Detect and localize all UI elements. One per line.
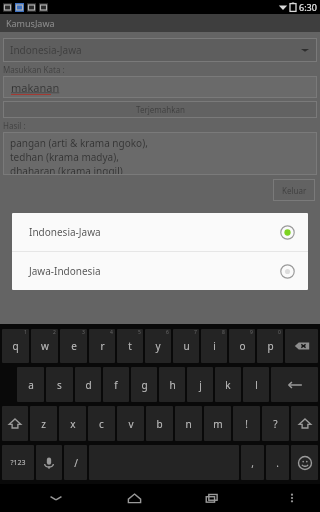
- staticText: .: [276, 456, 279, 470]
- button[interactable]: Indonesia-Jawa: [12, 213, 308, 251]
- button[interactable]: /: [64, 445, 87, 480]
- button[interactable]: Enter: [271, 367, 318, 402]
- staticText: 5: [138, 329, 141, 336]
- staticText: 6: [166, 329, 169, 336]
- staticText: ?: [273, 417, 278, 431]
- button[interactable]: Keluar: [273, 179, 315, 201]
- button[interactable]: j: [187, 367, 213, 402]
- staticText: Keluar: [282, 185, 307, 196]
- staticText: x: [70, 417, 76, 431]
- button[interactable]: z: [30, 406, 57, 441]
- staticText: ?123: [10, 458, 26, 468]
- button[interactable]: a: [17, 367, 44, 402]
- button[interactable]: q: [2, 329, 29, 363]
- button[interactable]: y: [145, 329, 171, 363]
- button[interactable]: e: [60, 329, 87, 363]
- button[interactable]: Backspace: [285, 329, 318, 363]
- staticText: Indonesia-Jawa: [10, 43, 82, 57]
- staticText: k: [225, 378, 231, 392]
- button[interactable]: k: [215, 367, 241, 402]
- button[interactable]: m: [204, 406, 231, 441]
- staticText: 6:30: [299, 1, 317, 13]
- button[interactable]: f: [103, 367, 129, 402]
- staticText: tedhan (krama madya),: [10, 150, 119, 164]
- button[interactable]: ,: [241, 445, 264, 480]
- staticText: t: [128, 339, 132, 353]
- button[interactable]: More options: [278, 484, 306, 512]
- button[interactable]: r: [89, 329, 115, 363]
- staticText: s: [57, 378, 62, 392]
- staticText: n: [185, 417, 192, 431]
- staticText: 8: [222, 329, 225, 336]
- button[interactable]: o: [229, 329, 255, 363]
- button[interactable]: s: [46, 367, 73, 402]
- staticText: /: [74, 456, 78, 470]
- staticText: i: [213, 339, 216, 353]
- staticText: dhaharan (krama inggil): [10, 164, 123, 175]
- button[interactable]: l: [243, 367, 269, 402]
- staticText: 1: [24, 329, 27, 336]
- button[interactable]: b: [146, 406, 173, 441]
- button[interactable]: p: [257, 329, 283, 363]
- button[interactable]: t: [117, 329, 143, 363]
- staticText: q: [12, 339, 19, 353]
- staticText: 2: [53, 329, 56, 336]
- staticText: Indonesia-Jawa: [29, 225, 101, 239]
- button[interactable]: h: [159, 367, 185, 402]
- staticText: ,: [251, 456, 254, 470]
- button[interactable]: Home: [117, 484, 151, 512]
- button[interactable]: ?123: [2, 445, 34, 480]
- button[interactable]: x: [59, 406, 86, 441]
- button[interactable]: Hide keyboard: [39, 484, 73, 512]
- button[interactable]: g: [131, 367, 157, 402]
- button[interactable]: Terjemahkan: [3, 101, 317, 118]
- staticText: o: [239, 339, 246, 353]
- staticText: z: [41, 417, 46, 431]
- staticText: !: [245, 417, 248, 431]
- button[interactable]: Shift: [2, 406, 28, 441]
- staticText: f: [114, 378, 118, 392]
- button[interactable]: i: [201, 329, 227, 363]
- button[interactable]: Indonesia-Jawa: [3, 38, 317, 62]
- button[interactable]: ?: [262, 406, 289, 441]
- staticText: d: [85, 378, 92, 392]
- button[interactable]: d: [75, 367, 101, 402]
- staticText: m: [213, 417, 223, 431]
- button[interactable]: c: [88, 406, 115, 441]
- button[interactable]: Emoji: [291, 445, 318, 480]
- staticText: Masukkan Kata :: [3, 64, 65, 75]
- staticText: 7: [194, 329, 197, 336]
- staticText: v: [128, 417, 134, 431]
- staticText: pangan (arti & krama ngoko),: [10, 136, 148, 150]
- staticText: u: [183, 339, 190, 353]
- staticText: 3: [82, 329, 85, 336]
- staticText: Jawa-Indonesia: [29, 264, 101, 278]
- staticText: Hasil :: [3, 120, 26, 131]
- staticText: e: [71, 339, 77, 353]
- staticText: KamusJawa: [6, 17, 55, 29]
- staticText: 0: [278, 329, 281, 336]
- staticText: j: [199, 378, 202, 392]
- staticText: b: [156, 417, 163, 431]
- staticText: h: [169, 378, 176, 392]
- staticText: c: [99, 417, 104, 431]
- button[interactable]: makanan: [3, 76, 317, 98]
- staticText: y: [155, 339, 161, 353]
- button[interactable]: u: [173, 329, 199, 363]
- button[interactable]: .: [266, 445, 289, 480]
- staticText: w: [41, 339, 49, 353]
- staticText: makanan: [11, 80, 60, 95]
- button[interactable]: Recent apps: [195, 484, 229, 512]
- button[interactable]: v: [117, 406, 144, 441]
- button[interactable]: Voice input: [36, 445, 62, 480]
- button[interactable]: Shift: [291, 406, 318, 441]
- button[interactable]: w: [31, 329, 58, 363]
- button[interactable]: n: [175, 406, 202, 441]
- button[interactable]: !: [233, 406, 260, 441]
- staticText: a: [28, 378, 34, 392]
- staticText: p: [267, 339, 274, 353]
- staticText: 4: [110, 329, 113, 336]
- staticText: Terjemahkan: [136, 104, 185, 115]
- button[interactable]: Jawa-Indonesia: [12, 252, 308, 290]
